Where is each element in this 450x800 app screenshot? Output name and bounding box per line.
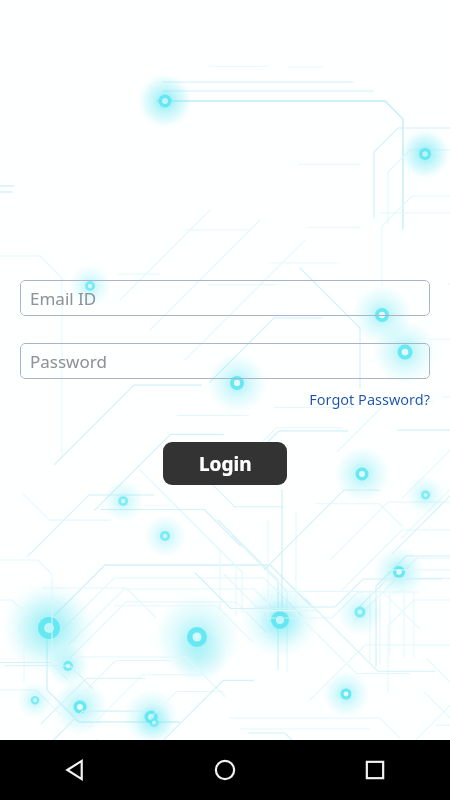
button[interactable]: Recent apps <box>300 740 450 800</box>
staticText: Email ID <box>30 287 97 310</box>
button[interactable]: Forgot Password? <box>309 389 430 409</box>
button[interactable]: Home <box>150 740 300 800</box>
staticText: Forgot Password? <box>309 389 430 409</box>
button[interactable]: Back <box>0 740 150 800</box>
button[interactable]: Password <box>20 343 430 379</box>
button[interactable]: Login <box>163 442 287 485</box>
button[interactable]: Email ID <box>20 280 430 316</box>
staticText: Login <box>199 451 252 477</box>
staticText: Password <box>30 350 107 373</box>
